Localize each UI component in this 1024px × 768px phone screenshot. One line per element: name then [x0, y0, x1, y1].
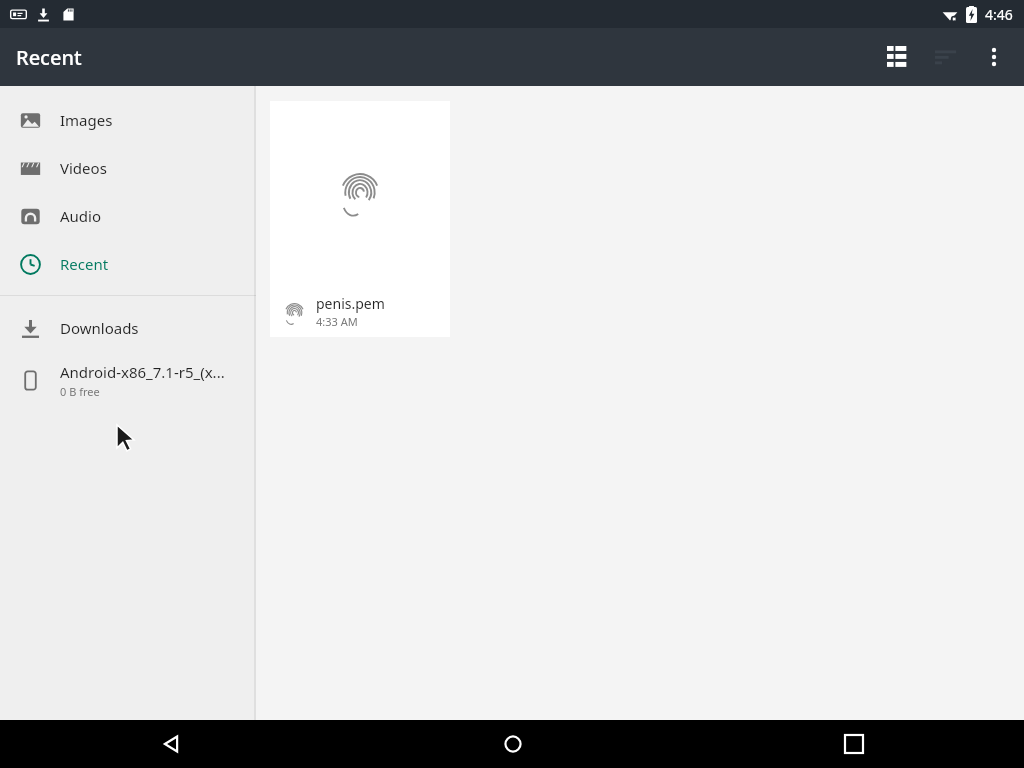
staticText: Downloads: [60, 318, 139, 338]
staticText: Audio: [60, 206, 102, 226]
button[interactable]: Downloads: [0, 304, 256, 352]
staticText: 4:46: [985, 5, 1013, 24]
staticText: Recent: [60, 254, 109, 274]
staticText: Images: [60, 110, 113, 130]
button[interactable]: Recent: [0, 240, 256, 288]
button[interactable]: Audio: [0, 192, 256, 240]
button[interactable]: Videos: [0, 144, 256, 192]
staticText: 0 B free: [60, 384, 100, 399]
button[interactable]: Android-x86_7.1-r5_(x...: [0, 352, 256, 408]
button[interactable]: Back: [0, 720, 342, 768]
button[interactable]: Home: [342, 720, 683, 768]
staticText: Recent: [16, 44, 82, 71]
button[interactable]: More options: [970, 33, 1018, 81]
button[interactable]: Images: [0, 96, 256, 144]
button[interactable]: Recents: [683, 720, 1024, 768]
staticText: Android-x86_7.1-r5_(x...: [60, 362, 225, 382]
button[interactable]: List view: [874, 33, 922, 81]
button[interactable]: penis.pem: [270, 101, 450, 337]
staticText: penis.pem: [316, 294, 385, 313]
staticText: Videos: [60, 158, 107, 178]
staticText: 4:33 AM: [316, 314, 358, 329]
